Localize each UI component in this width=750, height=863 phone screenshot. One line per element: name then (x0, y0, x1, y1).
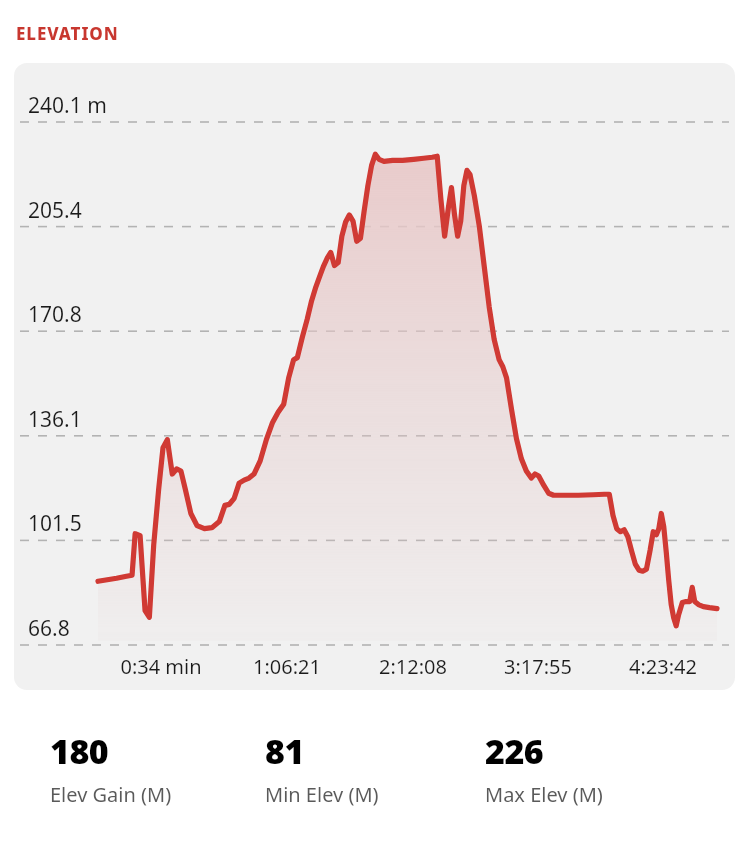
staticText: 170.8 (28, 300, 82, 329)
staticText: 81 (265, 728, 304, 774)
other: Elevation chart (14, 63, 735, 690)
staticText: 136.1 (28, 405, 82, 434)
staticText: 240.1 m (28, 91, 107, 120)
staticText: Elev Gain (M) (50, 781, 172, 808)
staticText: 205.4 (28, 196, 82, 225)
staticText: Min Elev (M) (265, 781, 379, 808)
staticText: 226 (485, 728, 544, 774)
button[interactable]: 226 (485, 728, 705, 808)
staticText: 3:17:55 (504, 653, 572, 680)
staticText: ELEVATION (16, 22, 119, 45)
staticText: 66.8 (28, 614, 70, 643)
button[interactable]: Elevation chart (14, 63, 735, 690)
staticText: 0:34 min (120, 653, 202, 680)
staticText: 4:23:42 (629, 653, 697, 680)
staticText: 1:06:21 (253, 653, 321, 680)
button[interactable]: ELEVATION (16, 22, 119, 45)
button[interactable]: 81 (265, 728, 485, 808)
staticText: 101.5 (28, 509, 82, 538)
staticText: 2:12:08 (379, 653, 447, 680)
staticText: 180 (50, 728, 109, 774)
button[interactable]: 180 (50, 728, 265, 808)
staticText: Max Elev (M) (485, 781, 603, 808)
